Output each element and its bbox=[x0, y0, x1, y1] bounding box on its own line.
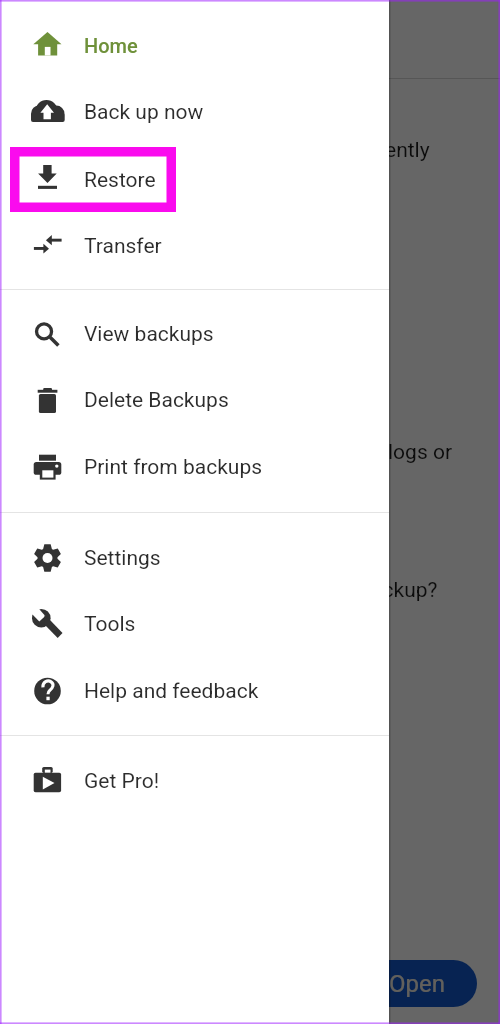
button[interactable]: Help and feedback bbox=[0, 658, 389, 724]
staticText: Back up now bbox=[84, 100, 204, 125]
staticText: Restore apps, photos, call logs or bbox=[144, 440, 453, 465]
button[interactable]: Restore bbox=[0, 147, 389, 213]
button[interactable]: Back up now bbox=[0, 79, 389, 146]
staticText: Tools bbox=[84, 612, 136, 637]
button[interactable]: Tools bbox=[0, 591, 389, 658]
button[interactable]: Get Pro! bbox=[0, 747, 389, 815]
staticText: Help and feedback bbox=[84, 679, 259, 704]
staticText: Print from backups bbox=[84, 455, 263, 480]
staticText: Need help with your backup? bbox=[170, 578, 438, 603]
staticText: Restore bbox=[84, 168, 156, 193]
button[interactable]: Open bbox=[357, 960, 477, 1007]
button[interactable]: Transfer bbox=[0, 213, 389, 279]
staticText: Get Pro! bbox=[84, 769, 160, 794]
button[interactable]: Settings bbox=[0, 525, 389, 591]
button[interactable]: Delete Backups bbox=[0, 367, 389, 434]
staticText: Open bbox=[389, 970, 445, 998]
staticText: Your device was backed up recently bbox=[98, 138, 430, 163]
button[interactable]: Home bbox=[0, 12, 389, 79]
staticText: Settings bbox=[84, 546, 161, 571]
staticText: View backups bbox=[84, 322, 214, 347]
staticText: Home bbox=[84, 34, 138, 57]
staticText: Backup and restore bbox=[40, 28, 238, 55]
button[interactable]: View backups bbox=[0, 301, 389, 367]
staticText: Transfer bbox=[84, 234, 162, 259]
staticText: Delete Backups bbox=[84, 388, 229, 413]
button[interactable]: Print from backups bbox=[0, 434, 389, 501]
